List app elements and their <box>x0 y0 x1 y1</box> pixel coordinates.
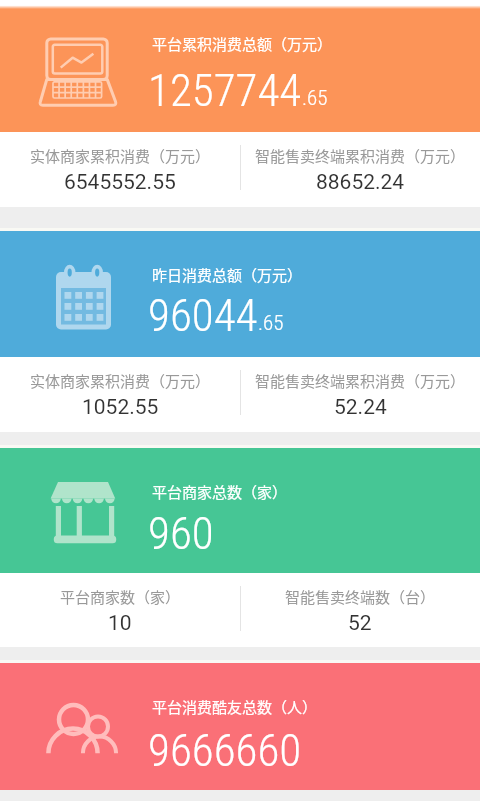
staticText: 88652.24 <box>316 170 405 195</box>
staticText: 52 <box>348 611 372 636</box>
staticText: 昨日消费总额（万元） <box>152 264 303 286</box>
staticText: 平台消费酷友总数（人） <box>152 696 318 718</box>
staticText: 平台累积消费总额（万元） <box>152 33 333 55</box>
staticText: 1052.55 <box>82 395 159 420</box>
button[interactable]: 实体商家累积消费（万元） <box>0 132 480 207</box>
staticText: 96044 <box>148 289 258 342</box>
button[interactable]: 平台商家数（家） <box>0 573 480 647</box>
staticText: .65 <box>258 311 284 336</box>
button[interactable]: 实体商家累积消费（万元） <box>0 357 480 432</box>
staticText: 平台商家数（家） <box>60 586 181 608</box>
staticText: 6545552.55 <box>64 170 176 195</box>
button[interactable]: 昨日消费总额（万元） <box>0 231 480 357</box>
staticText: 实体商家累积消费（万元） <box>30 370 211 392</box>
staticText: 9666660 <box>148 724 302 777</box>
button[interactable]: 平台累积消费总额（万元） <box>0 0 480 132</box>
staticText: 实体商家累积消费（万元） <box>30 145 211 167</box>
staticText: 智能售卖终端数（台） <box>285 586 436 608</box>
staticText: 10 <box>108 611 132 636</box>
staticText: 平台商家总数（家） <box>152 481 288 503</box>
staticText: 1257744 <box>148 64 302 117</box>
staticText: 52.24 <box>334 395 387 420</box>
button[interactable]: 平台商家总数（家） <box>0 448 480 573</box>
staticText: 智能售卖终端累积消费（万元） <box>255 370 466 392</box>
button[interactable]: 平台消费酷友总数（人） <box>0 663 480 790</box>
staticText: 960 <box>148 507 214 560</box>
staticText: .65 <box>302 86 328 111</box>
staticText: 智能售卖终端累积消费（万元） <box>255 145 466 167</box>
